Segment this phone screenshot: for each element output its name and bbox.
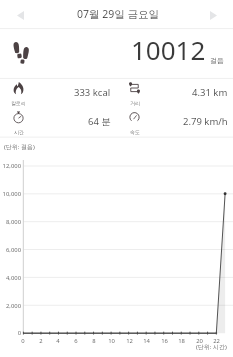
staticText: 시간 — [14, 129, 24, 135]
staticText: 2,000 — [5, 302, 21, 310]
button[interactable]: 속도 — [116, 107, 233, 136]
staticText: 14 — [143, 337, 150, 345]
staticText: 12,000 — [2, 162, 21, 170]
button[interactable]: 거리 — [116, 78, 233, 107]
staticText: 20 — [196, 337, 203, 345]
staticText: 64 분 — [88, 115, 111, 128]
staticText: 333 kcal — [74, 86, 111, 99]
staticText: 2 — [39, 337, 43, 345]
staticText: 10 — [108, 337, 115, 345]
staticText: 07월 29일 금요일 — [77, 7, 159, 21]
staticText: 10,000 — [2, 190, 21, 198]
staticText: 16 — [161, 337, 168, 345]
button[interactable]: 칼로리 — [0, 78, 116, 107]
staticText: 4.31 km — [192, 86, 228, 99]
staticText: 10012 — [131, 32, 206, 67]
staticText: 6,000 — [5, 246, 21, 254]
staticText: 0 — [17, 329, 21, 337]
staticText: 칼로리 — [11, 100, 26, 106]
staticText: (단위: 걸음) — [4, 143, 35, 151]
staticText: 22 — [213, 337, 220, 345]
staticText: 거리 — [130, 100, 140, 106]
button[interactable]: Next day — [201, 3, 225, 27]
staticText: (단위: 시간) — [196, 343, 227, 351]
button[interactable]: 시간 — [0, 107, 116, 136]
staticText: 0 — [21, 337, 25, 345]
staticText: 8,000 — [5, 218, 21, 226]
staticText: 18 — [178, 337, 185, 345]
staticText: 12 — [126, 337, 133, 345]
staticText: 4,000 — [5, 274, 21, 282]
staticText: 속도 — [130, 129, 140, 135]
staticText: 6 — [74, 337, 78, 345]
staticText: 4 — [56, 337, 60, 345]
staticText: 2.79 km/h — [183, 115, 228, 128]
button[interactable]: Previous day — [8, 3, 32, 27]
staticText: 걸음 — [210, 56, 224, 65]
staticText: 8 — [92, 337, 96, 345]
